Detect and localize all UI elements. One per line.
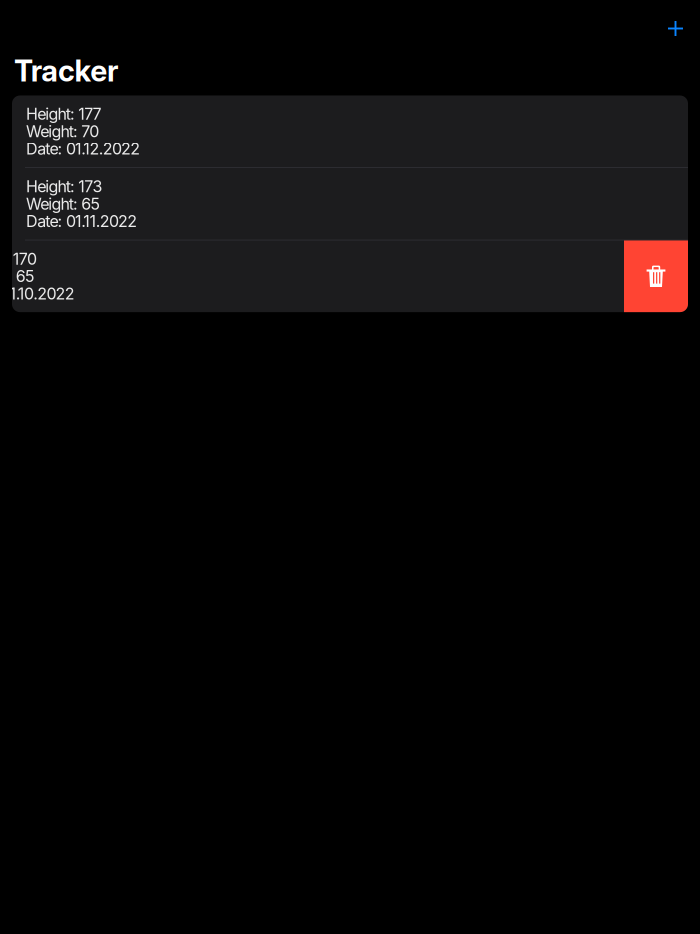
staticText: Date: 01.10.2022: [0, 284, 75, 303]
staticText: Height: 173: [26, 177, 102, 196]
staticText: Weight: 70: [26, 122, 99, 141]
button[interactable]: Delete: [624, 240, 688, 312]
button[interactable]: Add measurement: [658, 10, 693, 45]
staticText: Weight: 65: [26, 194, 100, 213]
button[interactable]: Height: 170: [12, 240, 688, 312]
staticText: Date: 01.12.2022: [26, 139, 140, 158]
staticText: Weight: 65: [0, 267, 35, 286]
staticText: Date: 01.11.2022: [26, 211, 137, 231]
button[interactable]: Height: 177: [12, 95, 688, 167]
button[interactable]: Height: 173: [12, 168, 688, 240]
staticText: Height: 177: [26, 104, 101, 124]
staticText: Height: 170: [0, 249, 37, 269]
staticText: Tracker: [14, 53, 119, 88]
